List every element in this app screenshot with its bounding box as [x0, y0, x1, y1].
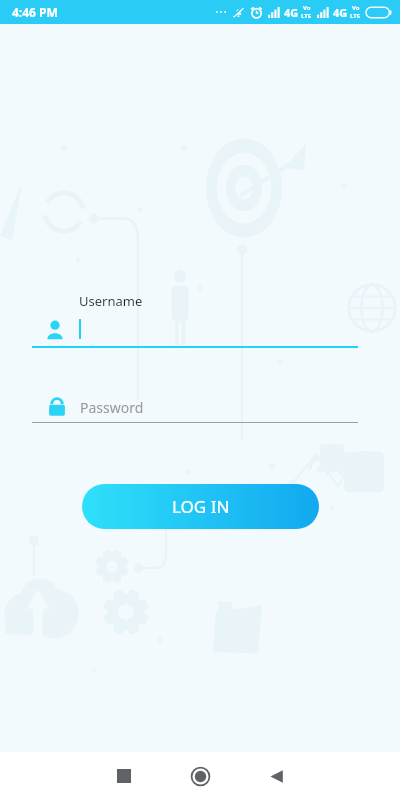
staticText: Vo: [303, 4, 311, 12]
button[interactable]: Password: [0, 392, 400, 422]
staticText: 4G: [333, 5, 348, 20]
staticText: LTE: [350, 12, 361, 20]
button[interactable]: Back: [256, 756, 296, 796]
staticText: 4:46 PM: [12, 4, 58, 20]
button[interactable]: [0, 313, 400, 346]
staticText: Username: [79, 292, 143, 310]
staticText: Password: [80, 398, 144, 417]
staticText: Vo: [352, 4, 360, 12]
staticText: LOG IN: [172, 495, 230, 518]
button[interactable]: LOG IN: [82, 484, 319, 529]
staticText: 4G: [284, 5, 299, 20]
button[interactable]: Home: [180, 756, 220, 796]
staticText: LTE: [301, 12, 312, 20]
button[interactable]: Recents: [104, 756, 144, 796]
